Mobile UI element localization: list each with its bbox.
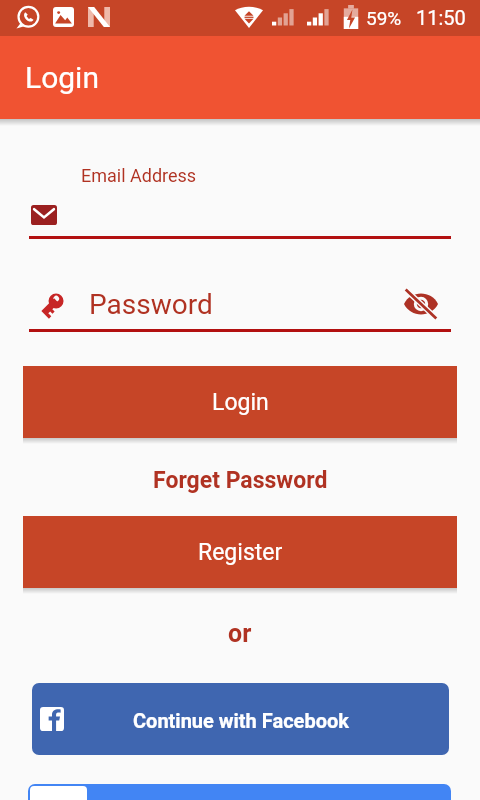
staticText: Login <box>212 389 269 416</box>
staticText: Password <box>89 288 213 321</box>
staticText: Email Address <box>81 165 197 186</box>
button[interactable]: Forget Password <box>145 463 336 498</box>
staticText: Continue with Facebook <box>133 709 349 732</box>
staticText: Register <box>198 539 283 566</box>
button[interactable]: Login <box>23 366 457 438</box>
button[interactable]: Sign in with Google <box>28 784 451 800</box>
staticText: 11:50 <box>416 6 466 29</box>
button[interactable]: Register <box>23 516 457 588</box>
staticText: Login <box>25 60 99 95</box>
staticText: 59% <box>366 7 402 29</box>
staticText: Forget Password <box>153 467 328 494</box>
button[interactable]: Continue with Facebook <box>32 683 449 755</box>
staticText: or <box>228 619 252 648</box>
button[interactable]: Show password <box>399 285 443 323</box>
